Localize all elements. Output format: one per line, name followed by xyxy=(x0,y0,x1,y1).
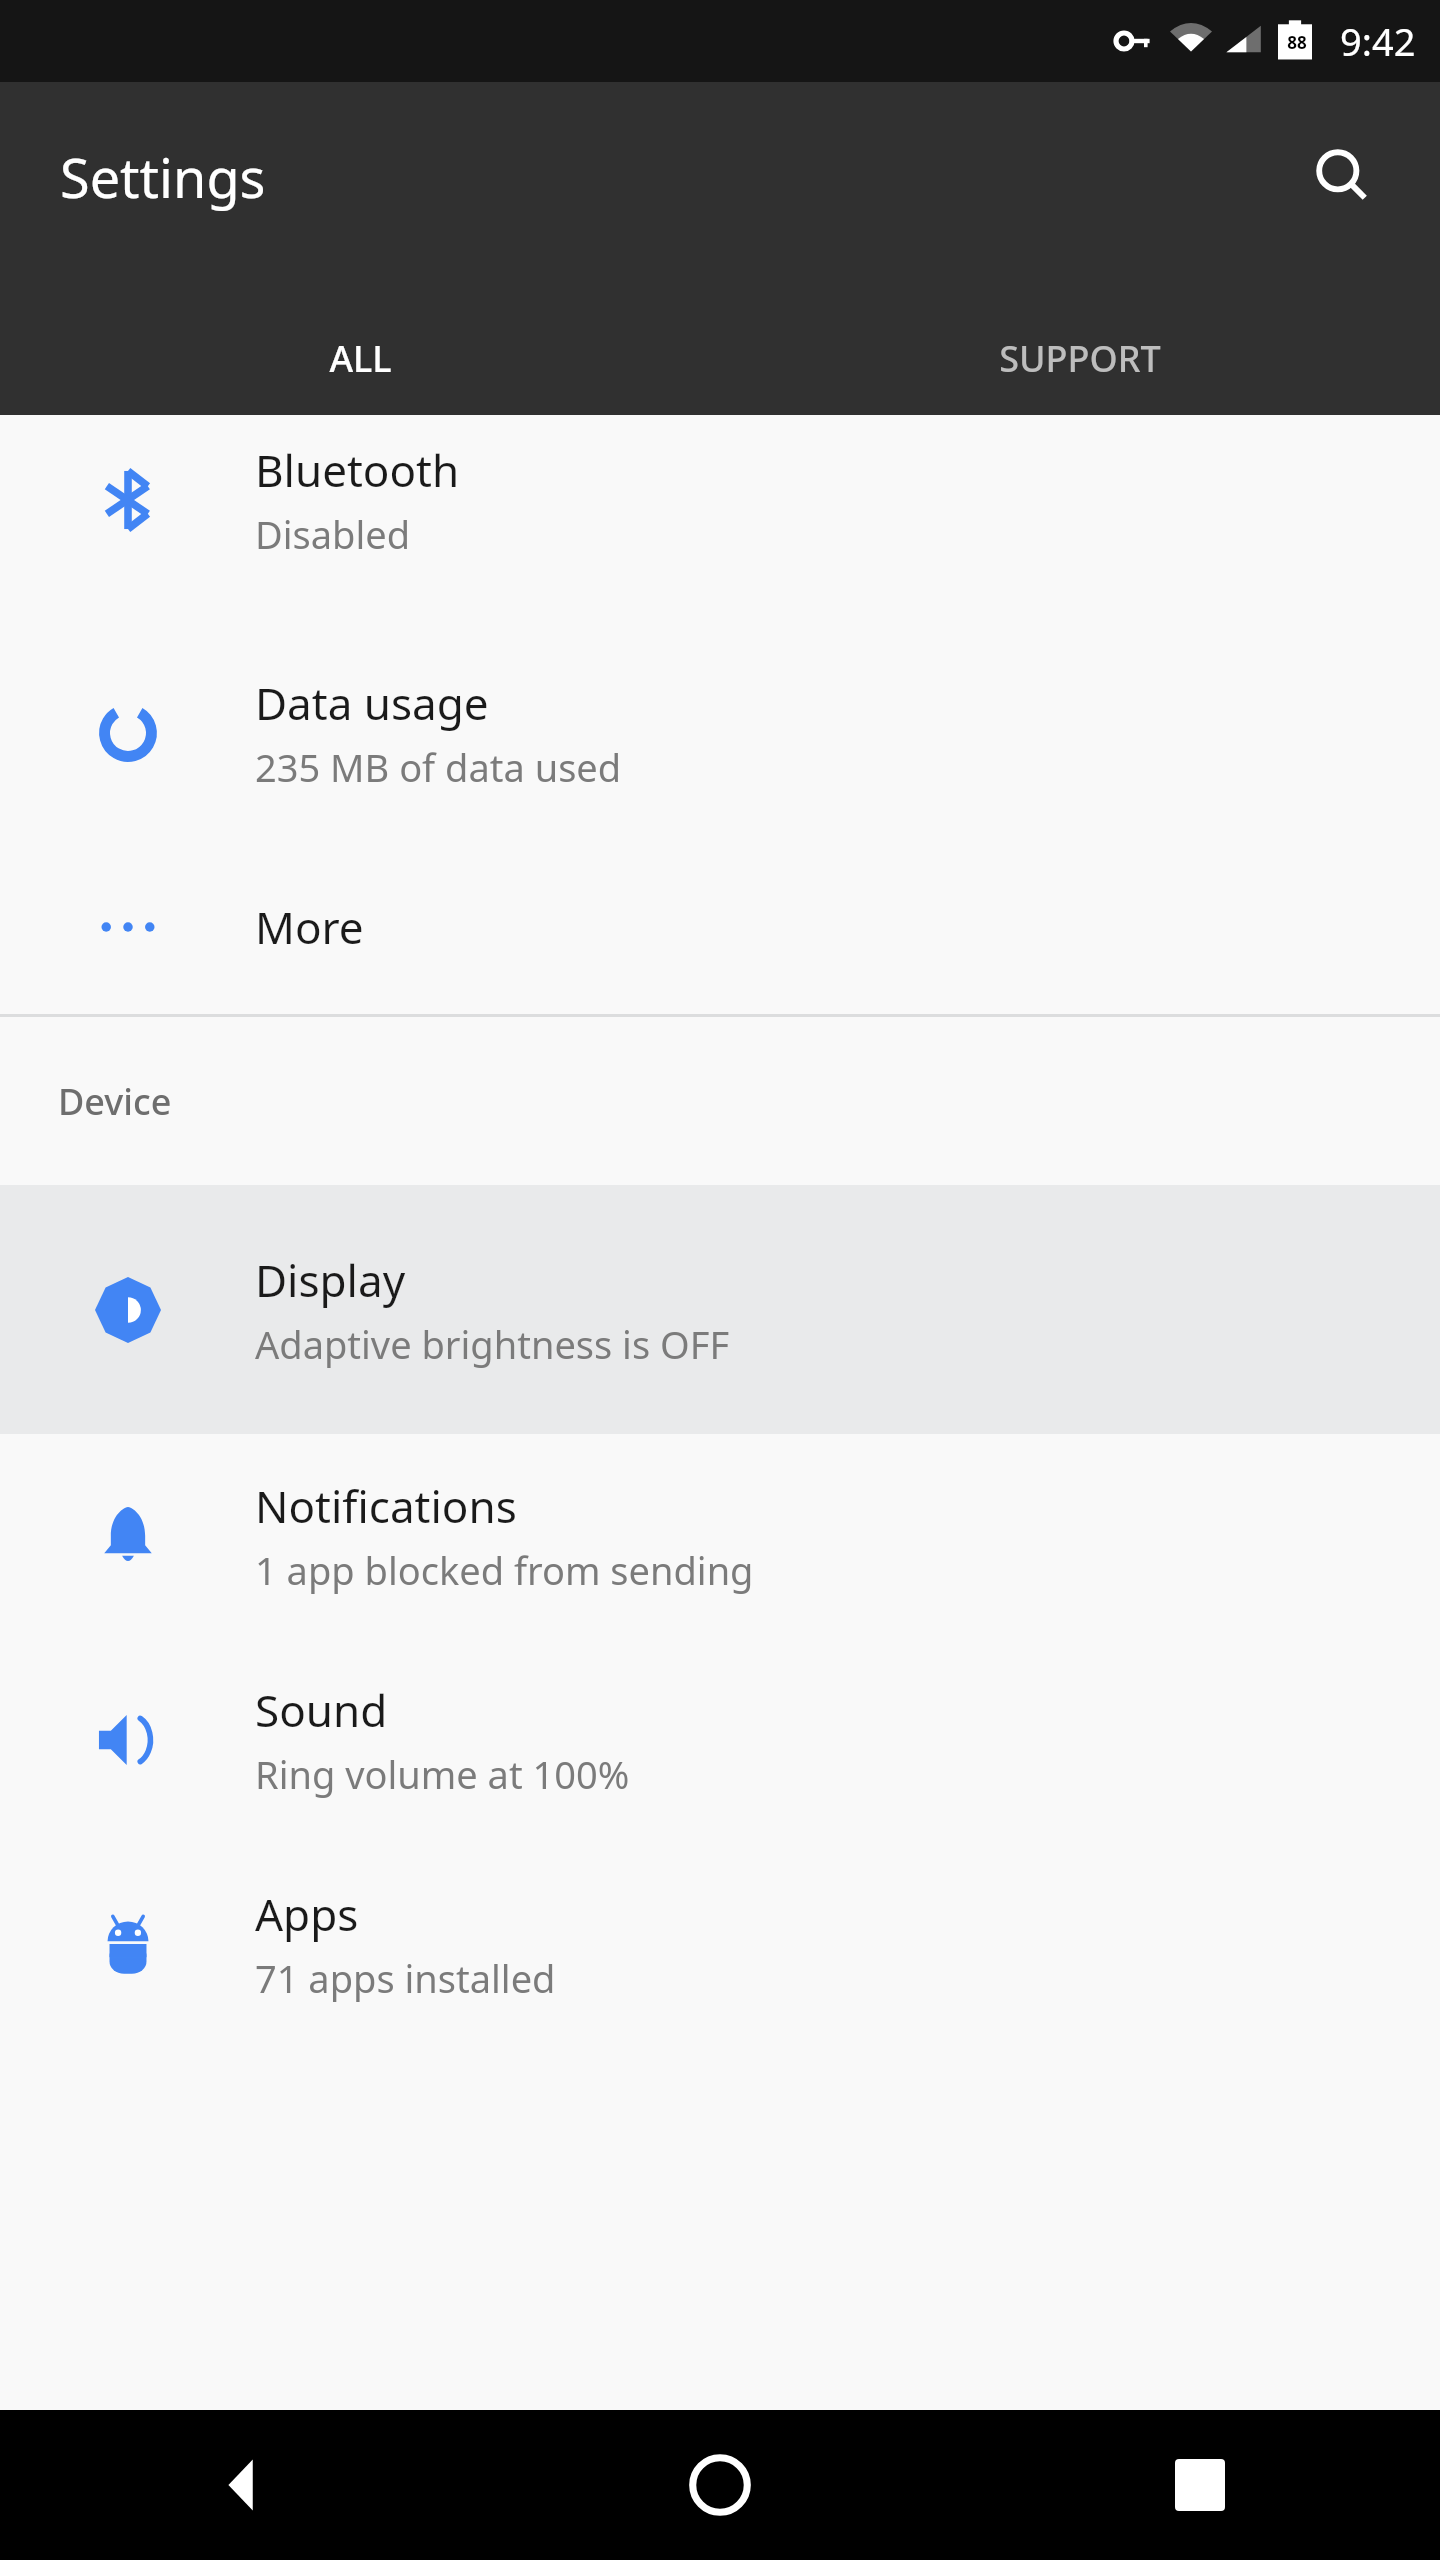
staticText: More xyxy=(255,897,364,957)
staticText: 9:42 xyxy=(1340,15,1416,67)
button[interactable]: Apps xyxy=(0,1842,1440,2046)
staticText: Sound xyxy=(255,1680,388,1740)
staticText: Ring volume at 100% xyxy=(255,1748,630,1800)
staticText: Data usage xyxy=(255,673,489,733)
staticText: SUPPORT xyxy=(999,334,1161,383)
staticText: 88 xyxy=(1287,31,1307,54)
staticText: 1 app blocked from sending xyxy=(255,1544,754,1596)
button[interactable]: Recent apps xyxy=(960,2410,1440,2560)
staticText: Disabled xyxy=(255,508,411,560)
button[interactable]: Sound xyxy=(0,1638,1440,1842)
staticText: Bluetooth xyxy=(255,440,460,500)
button[interactable]: SUPPORT xyxy=(720,272,1440,444)
button[interactable]: Home xyxy=(480,2410,960,2560)
button[interactable]: More xyxy=(0,839,1440,1014)
button[interactable]: Notifications xyxy=(0,1434,1440,1638)
staticText: Display xyxy=(255,1250,406,1310)
staticText: 71 apps installed xyxy=(255,1952,556,2004)
button[interactable]: Display xyxy=(0,1185,1440,1434)
button[interactable]: ALL xyxy=(0,272,720,444)
button[interactable]: Back xyxy=(0,2410,480,2560)
staticText: ALL xyxy=(329,334,392,383)
button[interactable]: Search xyxy=(1296,129,1392,225)
staticText: Apps xyxy=(255,1884,359,1944)
staticText: Device xyxy=(58,1077,172,1126)
staticText: Notifications xyxy=(255,1476,517,1536)
button[interactable]: Bluetooth xyxy=(0,415,1440,585)
staticText: Settings xyxy=(60,140,266,214)
staticText: 235 MB of data used xyxy=(255,741,622,793)
staticText: Adaptive brightness is OFF xyxy=(255,1318,730,1370)
button[interactable]: Data usage xyxy=(0,627,1440,839)
